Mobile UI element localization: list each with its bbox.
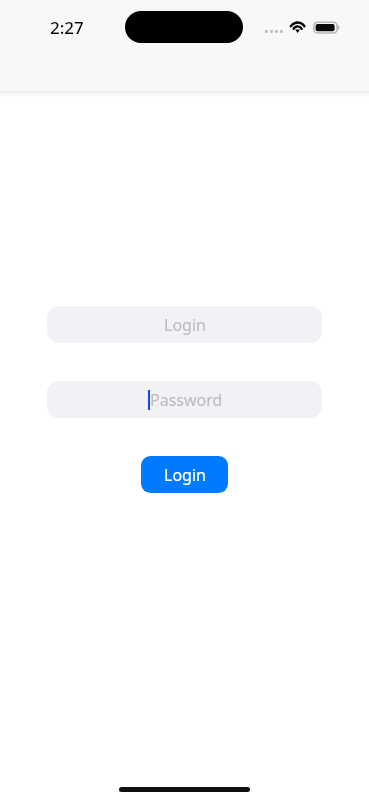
staticText: Password [150,389,223,411]
button[interactable]: Login [141,456,228,493]
other: Battery full [310,20,340,35]
staticText: 2:27 [50,16,84,39]
button[interactable]: Password [47,381,322,418]
staticText: Login [164,314,206,336]
other: Wi-Fi [288,18,308,35]
staticText: Login [164,464,206,486]
button[interactable]: Login [47,306,322,343]
other: Activity indicator [264,29,284,34]
